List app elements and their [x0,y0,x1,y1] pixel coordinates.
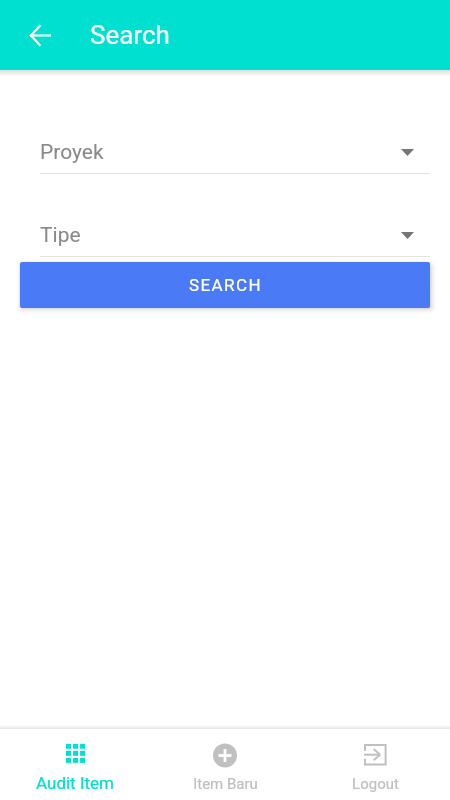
button[interactable]: Item Baru [150,729,300,793]
staticText: Logout [352,775,399,793]
button[interactable]: Proyek [20,140,430,174]
staticText: Item Baru [193,775,258,793]
staticText: SEARCH [189,275,262,295]
staticText: Audit Item [36,773,114,793]
button[interactable]: Audit Item [0,729,150,793]
button[interactable]: SEARCH [20,262,430,308]
button[interactable]: Logout [300,729,450,793]
staticText: Search [90,20,170,50]
button[interactable]: Back [16,11,64,59]
staticText: Tipe [40,223,81,248]
staticText: Proyek [40,140,104,165]
button[interactable]: Tipe [20,223,430,257]
